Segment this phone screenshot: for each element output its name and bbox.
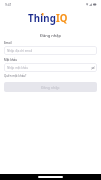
button[interactable]: Đăng nhập bbox=[4, 82, 97, 92]
staticText: Đăng nhập bbox=[40, 33, 62, 38]
staticText: Quên mật khẩu? bbox=[4, 74, 27, 78]
staticText: Nhập mật khẩu bbox=[7, 66, 28, 70]
staticText: Đăng nhập bbox=[41, 85, 60, 90]
staticText: Email bbox=[4, 41, 12, 45]
button[interactable]: Quên mật khẩu? bbox=[4, 74, 27, 78]
button[interactable]: Hiện mật khẩu bbox=[91, 66, 95, 70]
staticText: Nhập địa chỉ email bbox=[7, 49, 33, 53]
staticText: Mật khẩu bbox=[4, 58, 18, 62]
staticText: 9:41 bbox=[5, 2, 12, 6]
staticText: ThingIQ bbox=[28, 12, 68, 25]
button[interactable]: Nhập địa chỉ email bbox=[4, 46, 97, 55]
button[interactable]: Nhập mật khẩu bbox=[4, 63, 97, 72]
